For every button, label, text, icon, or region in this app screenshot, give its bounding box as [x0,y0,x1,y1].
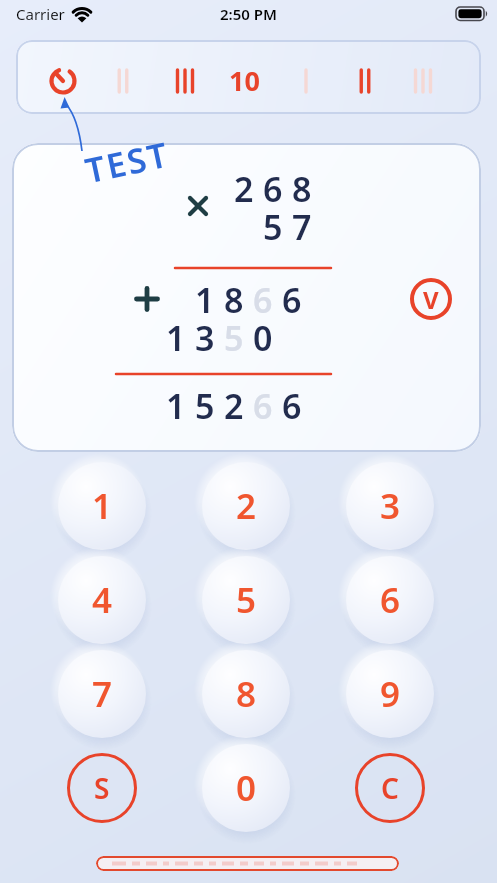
button[interactable]: 7 [58,650,146,738]
staticText: 5 [195,383,215,429]
staticText: 10 [229,62,260,99]
staticText: V [423,283,439,316]
button[interactable]: 4 [58,556,146,644]
staticText: 2 [224,383,244,429]
staticText: 6 [282,383,302,429]
staticText: 8 [224,277,244,323]
button[interactable]: S [67,753,137,823]
staticText: 4 [92,576,113,624]
staticText: 8 [292,166,312,212]
staticText: 2 [234,166,254,212]
staticText: 6 [253,277,273,323]
button[interactable]: 1 [58,462,146,550]
staticText: 7 [92,670,113,718]
staticText: 6 [253,383,273,429]
button[interactable] [96,856,399,871]
staticText: 1 [166,315,186,361]
button[interactable]: 8 [202,650,290,738]
button[interactable]: 5 [202,556,290,644]
staticText: 2:50 PM [220,4,277,24]
staticText: 5 [224,315,244,361]
staticText: 1 [195,277,215,323]
staticText: 2 [236,482,257,530]
staticText: 0 [236,764,257,812]
staticText: 1 [166,383,186,429]
button[interactable]: 6 [346,556,434,644]
staticText: 6 [263,166,283,212]
button[interactable]: 0 [202,744,290,832]
staticText: 3 [195,315,215,361]
button[interactable]: V [410,278,452,320]
button[interactable]: 9 [346,650,434,738]
staticText: 6 [282,277,302,323]
staticText: 3 [380,482,401,530]
staticText: Carrier [16,4,65,24]
staticText: 1 [92,482,113,530]
staticText: TEST [81,131,174,193]
staticText: S [94,769,110,807]
staticText: 5 [236,576,257,624]
button[interactable]: 2 [202,462,290,550]
staticText: C [381,769,399,807]
staticText: 7 [292,204,312,250]
staticText: 8 [236,670,257,718]
staticText: 6 [380,576,401,624]
staticText: 5 [263,204,283,250]
button[interactable]: C [355,753,425,823]
button[interactable]: 3 [346,462,434,550]
staticText: 0 [253,315,273,361]
staticText: 9 [380,670,401,718]
